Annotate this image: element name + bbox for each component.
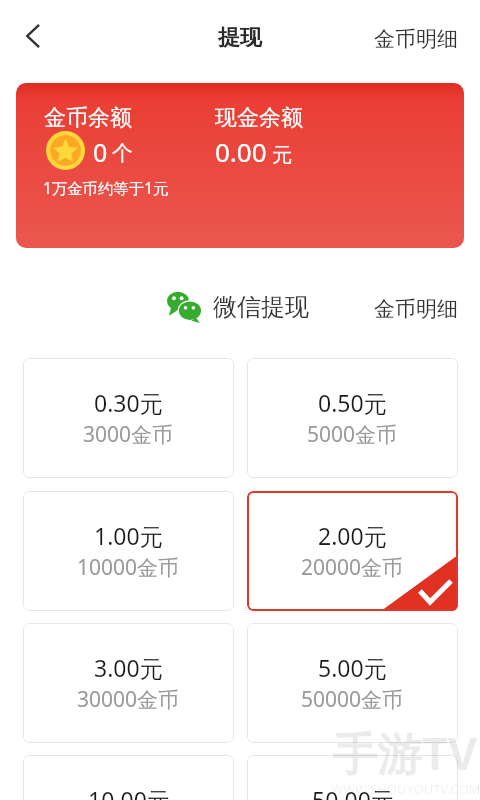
button[interactable]: 5.00元 <box>247 623 458 743</box>
staticText: 5000金币 <box>307 420 398 449</box>
staticText: 10000金币 <box>77 553 180 582</box>
button[interactable]: 金币明细 <box>360 291 480 331</box>
staticText: 50000金币 <box>301 685 404 714</box>
staticText: 金币余额 <box>44 104 132 132</box>
staticText: 0 <box>93 135 108 169</box>
staticText: 30000金币 <box>77 685 180 714</box>
staticText: 0.00 <box>215 134 267 169</box>
staticText: 3.00元 <box>94 652 163 683</box>
staticText: WWW.SHOUYOUTV.COM <box>331 780 480 798</box>
button[interactable]: 10.00元 <box>23 755 234 800</box>
staticText: 金币明细 <box>374 26 458 52</box>
staticText: 金币明细 <box>374 296 458 322</box>
staticText: 元 <box>272 143 292 168</box>
button[interactable]: 2.00元 <box>247 491 458 611</box>
button[interactable]: 金币明细 <box>360 21 480 61</box>
button[interactable]: 1.00元 <box>23 491 234 611</box>
staticText: 1.00元 <box>94 520 163 551</box>
button[interactable]: Back <box>11 14 55 58</box>
staticText: 现金余额 <box>215 104 303 132</box>
button[interactable]: 3.00元 <box>23 623 234 743</box>
staticText: 微信提现 <box>213 292 309 322</box>
staticText: 0.50元 <box>318 387 387 418</box>
staticText: 0.30元 <box>94 387 163 418</box>
staticText: 50.00元 <box>312 784 394 800</box>
button[interactable]: 50.00元 <box>247 755 458 800</box>
staticText: 1万金币约等于1元 <box>43 178 169 199</box>
staticText: 提现 <box>218 24 262 52</box>
staticText: 10.00元 <box>88 784 170 800</box>
staticText: 20000金币 <box>301 553 404 582</box>
staticText: 5.00元 <box>318 652 387 683</box>
staticText: 3000金币 <box>83 420 174 449</box>
button[interactable]: 微信提现 <box>167 286 309 328</box>
button[interactable]: 0.50元 <box>247 358 458 478</box>
staticText: 手游TV <box>332 722 478 783</box>
staticText: 个 <box>112 140 133 166</box>
staticText: 2.00元 <box>318 520 387 551</box>
button[interactable]: 0.30元 <box>23 358 234 478</box>
